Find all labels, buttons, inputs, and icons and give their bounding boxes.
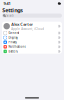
staticText: Battery (8, 50, 17, 53)
staticText: Settings (2, 7, 23, 14)
staticText: Display (8, 36, 17, 39)
button[interactable]: Privacy (2, 40, 62, 44)
staticText: General (8, 31, 19, 35)
button[interactable]: Battery (2, 49, 62, 54)
staticText: Privacy (8, 40, 16, 44)
staticText: Alex Carter (11, 22, 33, 27)
staticText: Notifications (8, 45, 25, 48)
button[interactable]: Display (2, 35, 62, 40)
staticText: 9:41 (3, 1, 10, 6)
staticText: Search (6, 14, 14, 17)
staticText: Apple Account, iCloud (11, 27, 44, 31)
button[interactable]: Notifications (2, 44, 62, 49)
button[interactable]: General (2, 31, 62, 35)
button[interactable]: Alex Carter (2, 22, 62, 31)
